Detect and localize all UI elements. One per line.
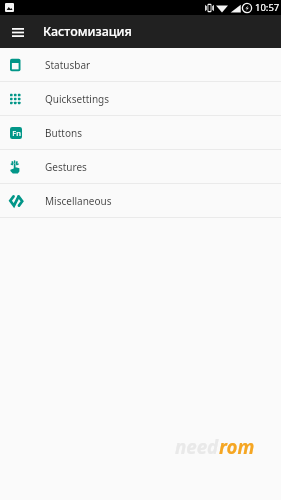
staticText: Miscellaneous	[45, 194, 112, 208]
button[interactable]: Miscellaneous	[0, 184, 281, 217]
button[interactable]: Quicksettings	[0, 82, 281, 115]
staticText: Кастомизация	[43, 23, 132, 40]
staticText: Statusbar	[45, 58, 91, 72]
staticText: Gestures	[45, 160, 87, 174]
button[interactable]: Gestures	[0, 150, 281, 183]
button[interactable]: Fn	[0, 116, 281, 149]
staticText: need	[175, 434, 219, 459]
staticText: Quicksettings	[45, 92, 110, 106]
staticText: Buttons	[45, 126, 82, 140]
staticText: 10:57	[255, 1, 280, 14]
button[interactable]: Open navigation menu	[6, 20, 30, 44]
staticText: Fn	[12, 128, 21, 138]
button[interactable]: Statusbar	[0, 48, 281, 81]
staticText: rom	[219, 434, 255, 459]
